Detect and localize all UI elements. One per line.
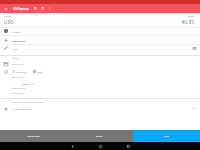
button[interactable]: Currency [4, 15, 12, 17]
staticText: Utilities [12, 30, 21, 33]
button[interactable]: Month [22, 82, 34, 85]
button[interactable]: SAVE [133, 130, 200, 142]
staticText: 1 [12, 82, 14, 85]
button[interactable]: Duplicate [39, 5, 46, 12]
button[interactable]: REPEAT [33, 70, 44, 73]
button[interactable]: Notes [4, 44, 196, 52]
button[interactable]: Recents [124, 142, 132, 150]
button[interactable]: More options [46, 5, 53, 12]
button[interactable]: Utilities [4, 27, 196, 35]
button[interactable]: Delete [32, 5, 39, 12]
staticText: 12-08-2017 [12, 91, 25, 94]
staticText: NO END DATE [16, 71, 28, 73]
button[interactable]: CLEAR [66, 130, 133, 142]
button[interactable]: ADD PHOTO [0, 130, 66, 142]
staticText: SEND ME A REMINDER NOTIFICATION [12, 101, 43, 103]
staticText: NEXT DUE DATE [12, 87, 25, 89]
staticText: USD [4, 19, 14, 26]
staticText: CLEAR [96, 135, 103, 138]
button[interactable]: Home [96, 142, 104, 150]
staticText: 3 Days Before Due [12, 107, 33, 110]
staticText: Boston Gas [12, 39, 26, 42]
staticText: ADD PHOTO [27, 135, 40, 138]
button[interactable]: USD [4, 19, 14, 26]
staticText: Currency [4, 15, 12, 17]
staticText: REPEAT EVERY [12, 76, 24, 78]
button[interactable]: Pick date [191, 60, 197, 66]
button[interactable]: Boston Gas [4, 36, 196, 44]
button[interactable]: Back [2, 5, 10, 13]
staticText: Amount [187, 15, 194, 17]
button[interactable]: 3 Days Before Due [4, 106, 195, 111]
button[interactable]: NO END DATE [12, 70, 28, 73]
staticText: DATE(S) [12, 57, 19, 59]
button[interactable]: Attach receipt [191, 45, 197, 51]
button[interactable]: Back [68, 142, 76, 150]
staticText: Month [22, 82, 30, 85]
button[interactable]: 03-07-2017 [4, 61, 200, 66]
staticText: 40.95 [181, 19, 194, 26]
staticText: SAVE [164, 135, 170, 138]
staticText: 03-07-2017 [12, 62, 25, 65]
staticText: REPEAT [37, 71, 44, 73]
button[interactable]: Choose category [191, 28, 197, 34]
button[interactable]: Pick next due date [191, 91, 197, 97]
staticText: Edit Expense [13, 7, 29, 11]
staticText: Notes [12, 47, 19, 50]
